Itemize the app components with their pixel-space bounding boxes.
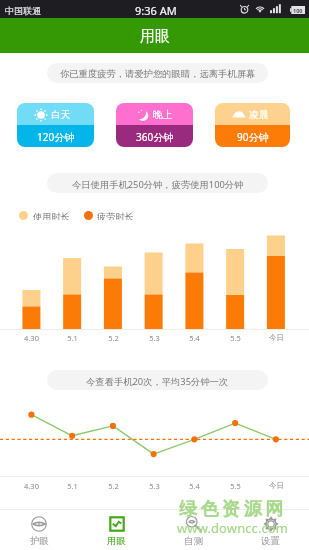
staticText: 5.1 [67, 333, 78, 343]
staticText: 5.2 [108, 481, 119, 491]
staticText: 5.3 [149, 333, 160, 343]
staticText: 护眼 [30, 535, 49, 547]
staticText: 90分钟 [237, 130, 269, 144]
staticText: 今日 [269, 333, 284, 342]
staticText: 设置 [261, 535, 280, 547]
button[interactable]: 自测 [155, 510, 232, 550]
staticText: 5.4 [189, 481, 200, 491]
staticText: 100 [293, 7, 303, 14]
staticText: 5.4 [189, 333, 200, 343]
staticText: 9:36 AM [135, 3, 177, 18]
staticText: 使用时长 [33, 211, 70, 220]
staticText: 今查看手机20次，平均35分钟一次 [86, 375, 229, 388]
staticText: 今日使用手机250分钟，疲劳使用100分钟 [72, 178, 244, 191]
staticText: 绿色资源网 [177, 498, 285, 521]
staticText: 疲劳时长 [97, 211, 134, 220]
staticText: 5.2 [108, 333, 119, 343]
staticText: 用眼 [107, 535, 126, 547]
staticText: 中国联通 [5, 5, 41, 16]
button[interactable]: 护眼 [0, 510, 78, 550]
staticText: 晚上 [153, 109, 173, 121]
button[interactable]: 设置 [232, 510, 309, 550]
staticText: 5.3 [149, 481, 160, 491]
button[interactable]: 晚上 [116, 103, 193, 147]
staticText: 你已重度疲劳，请爱护您的眼睛，远离手机屏幕 [60, 68, 256, 80]
staticText: www.downcc.com [177, 519, 289, 537]
staticText: 用眼 [140, 27, 170, 46]
staticText: 白天 [51, 109, 71, 121]
staticText: 凌晨 [249, 109, 269, 121]
staticText: 自测 [184, 535, 203, 547]
staticText: 今日 [269, 481, 284, 490]
staticText: 360分钟 [136, 130, 174, 144]
staticText: 4.30 [24, 333, 39, 343]
staticText: 5.5 [230, 333, 241, 343]
staticText: 5.5 [230, 481, 241, 491]
staticText: 4.30 [24, 481, 39, 491]
button[interactable]: 白天 [17, 103, 94, 147]
button[interactable]: 用眼 [78, 510, 155, 550]
staticText: 120分钟 [37, 130, 75, 144]
staticText: 5.1 [67, 481, 78, 491]
button[interactable]: 凌晨 [215, 103, 290, 147]
